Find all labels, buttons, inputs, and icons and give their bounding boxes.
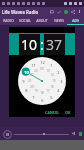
- staticText: Life Waves Radio: [2, 9, 39, 15]
- button[interactable]: ABOUT: [33, 16, 50, 24]
- staticText: 1: [50, 63, 53, 68]
- button[interactable]: 10: [21, 35, 38, 54]
- staticText: ABOUT: [36, 18, 48, 23]
- button[interactable]: More options: [76, 8, 83, 15]
- button[interactable]: Seek bar: [14, 130, 69, 138]
- button[interactable]: Clock dial: [18, 57, 66, 105]
- button[interactable]: 37: [46, 35, 63, 54]
- staticText: 9: [22, 79, 25, 84]
- staticText: 10: [24, 70, 29, 75]
- staticText: 17: [46, 89, 50, 93]
- staticText: 11: [31, 63, 36, 68]
- button[interactable]: Favorite: [55, 8, 62, 15]
- staticText: RADIO: [3, 18, 14, 23]
- staticText: 14: [50, 73, 54, 77]
- staticText: 19: [34, 89, 38, 93]
- staticText: 20: [30, 85, 34, 89]
- button[interactable]: Share: [69, 8, 76, 15]
- staticText: ADS: [72, 18, 79, 23]
- staticText: 22: [30, 73, 34, 77]
- button[interactable]: OK: [63, 109, 75, 116]
- staticText: 16: [50, 85, 54, 89]
- button[interactable]: ADS: [67, 16, 84, 24]
- button[interactable]: CANCEL: [42, 109, 63, 116]
- staticText: OK: [65, 110, 71, 115]
- staticText: 15: [52, 79, 56, 83]
- staticText: 12: [40, 60, 45, 65]
- staticText: :: [40, 35, 44, 54]
- button[interactable]: SOCIAL: [16, 16, 33, 24]
- staticText: 2: [57, 70, 60, 75]
- staticText: 7: [32, 95, 35, 100]
- button[interactable]: Status: [62, 8, 69, 15]
- staticText: SOCIAL: [19, 18, 31, 23]
- staticText: 8: [25, 88, 28, 93]
- button[interactable]: NEWS: [50, 16, 67, 24]
- staticText: CANCEL: [45, 110, 60, 115]
- staticText: NEWS: [54, 18, 64, 23]
- staticText: 00: [40, 67, 44, 71]
- button[interactable]: RADIO: [0, 16, 16, 24]
- staticText: 5: [50, 95, 53, 100]
- button[interactable]: Volume: [70, 129, 79, 138]
- staticText: 3: [60, 79, 63, 84]
- staticText: 4: [57, 88, 60, 93]
- staticText: 10: [21, 35, 38, 54]
- button[interactable]: Pause: [2, 129, 12, 139]
- staticText: 21: [28, 79, 32, 83]
- staticText: 18: [40, 91, 44, 95]
- staticText: 23: [34, 69, 38, 73]
- button[interactable]: Cast: [48, 8, 55, 15]
- staticText: 37: [46, 35, 63, 54]
- staticText: 6: [41, 98, 44, 103]
- staticText: 13: [46, 69, 50, 73]
